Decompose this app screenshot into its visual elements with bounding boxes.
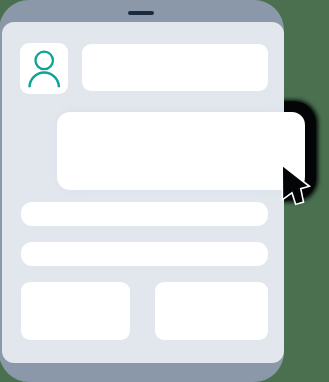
button[interactable]: List item one	[21, 202, 268, 226]
button[interactable]: List item two	[21, 242, 268, 266]
button[interactable]: Dialog sheet	[57, 112, 305, 190]
button[interactable]: Profile	[20, 43, 68, 94]
